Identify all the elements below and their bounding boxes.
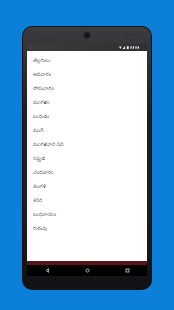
button[interactable]: సోమవారం (27, 82, 147, 96)
button[interactable]: శనిరి (27, 194, 147, 208)
staticText: మంగళం (33, 100, 50, 107)
button[interactable]: ఆదివారం (27, 68, 147, 82)
staticText: ఆదివారం (33, 72, 52, 79)
staticText: సఫ్రుడ (33, 156, 46, 163)
staticText: తెల్లగులు (33, 58, 51, 65)
button[interactable]: మంగళం (27, 96, 147, 110)
button[interactable]: Home (67, 265, 107, 276)
button[interactable]: తెల్లగులు (27, 54, 147, 68)
button[interactable]: శుంగళి (27, 180, 147, 194)
staticText: బుధుడు (33, 114, 50, 121)
button[interactable]: Recent apps (107, 265, 147, 276)
staticText: బుధవాయం (33, 212, 57, 219)
staticText: శనిరి (33, 198, 43, 205)
button[interactable]: బుధుడు (27, 110, 147, 124)
staticText: శుంగళి (33, 184, 47, 191)
staticText: సోమవారం (33, 86, 54, 93)
button[interactable]: మునిి (27, 124, 147, 138)
button[interactable]: చందవారం (27, 166, 147, 180)
button[interactable]: Back (27, 265, 67, 276)
staticText: మునిి (33, 128, 44, 135)
button[interactable]: బుధవాయం (27, 208, 147, 222)
staticText: గురువు (33, 226, 48, 233)
button[interactable]: మంగళవారి నిది (27, 138, 147, 152)
button[interactable]: గురువు (27, 222, 147, 236)
button[interactable]: సఫ్రుడ (27, 152, 147, 166)
staticText: చందవారం (33, 170, 54, 177)
staticText: మంగళవారి నిది (33, 141, 64, 149)
